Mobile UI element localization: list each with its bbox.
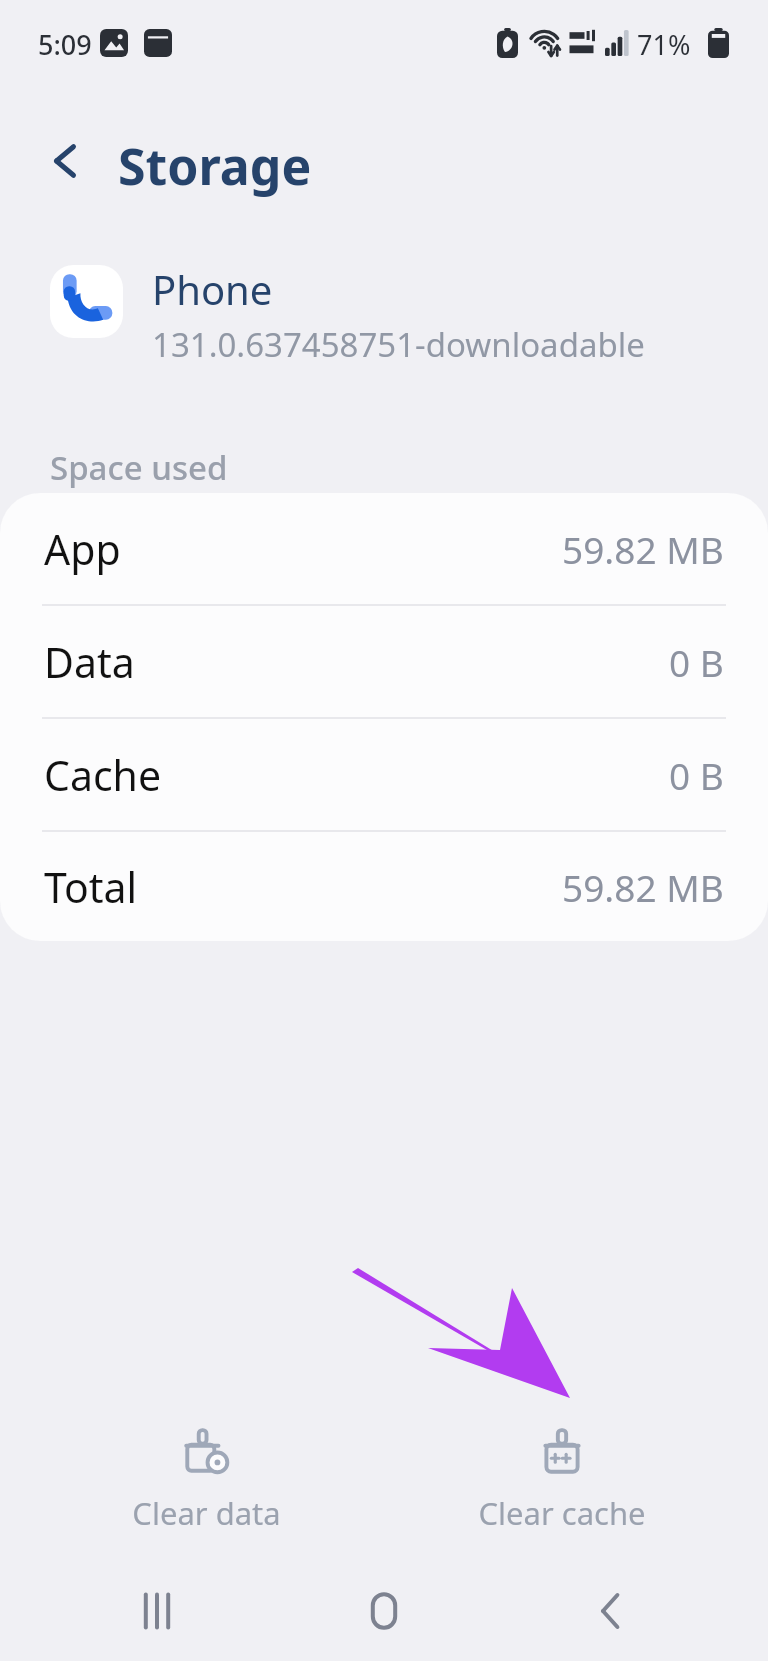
button[interactable]: Cache: [0, 719, 768, 830]
button[interactable]: Back: [30, 125, 102, 197]
staticText: 131.0.637458751-downloadable: [152, 322, 645, 367]
staticText: Phone: [152, 262, 273, 316]
staticText: Space used: [50, 445, 228, 490]
staticText: Data: [44, 634, 135, 690]
staticText: Clear data: [132, 1492, 281, 1534]
staticText: 59.82 MB: [562, 524, 724, 574]
button[interactable]: Home: [314, 1560, 454, 1661]
staticText: Clear cache: [478, 1492, 646, 1534]
button[interactable]: Back: [541, 1560, 681, 1661]
button[interactable]: Clear cache: [412, 1418, 712, 1542]
staticText: 71%: [637, 26, 691, 63]
staticText: Storage: [118, 132, 312, 200]
staticText: 0 B: [669, 750, 724, 800]
button[interactable]: Recent apps: [87, 1560, 227, 1661]
staticText: App: [44, 521, 121, 577]
button[interactable]: Clear data: [56, 1418, 356, 1542]
staticText: 0 B: [669, 637, 724, 687]
staticText: 59.82 MB: [562, 862, 724, 912]
staticText: 5:09: [38, 26, 92, 63]
staticText: Total: [44, 859, 138, 915]
button[interactable]: App: [0, 493, 768, 604]
staticText: Cache: [44, 747, 162, 803]
button[interactable]: Total: [0, 832, 768, 941]
button[interactable]: Data: [0, 606, 768, 717]
